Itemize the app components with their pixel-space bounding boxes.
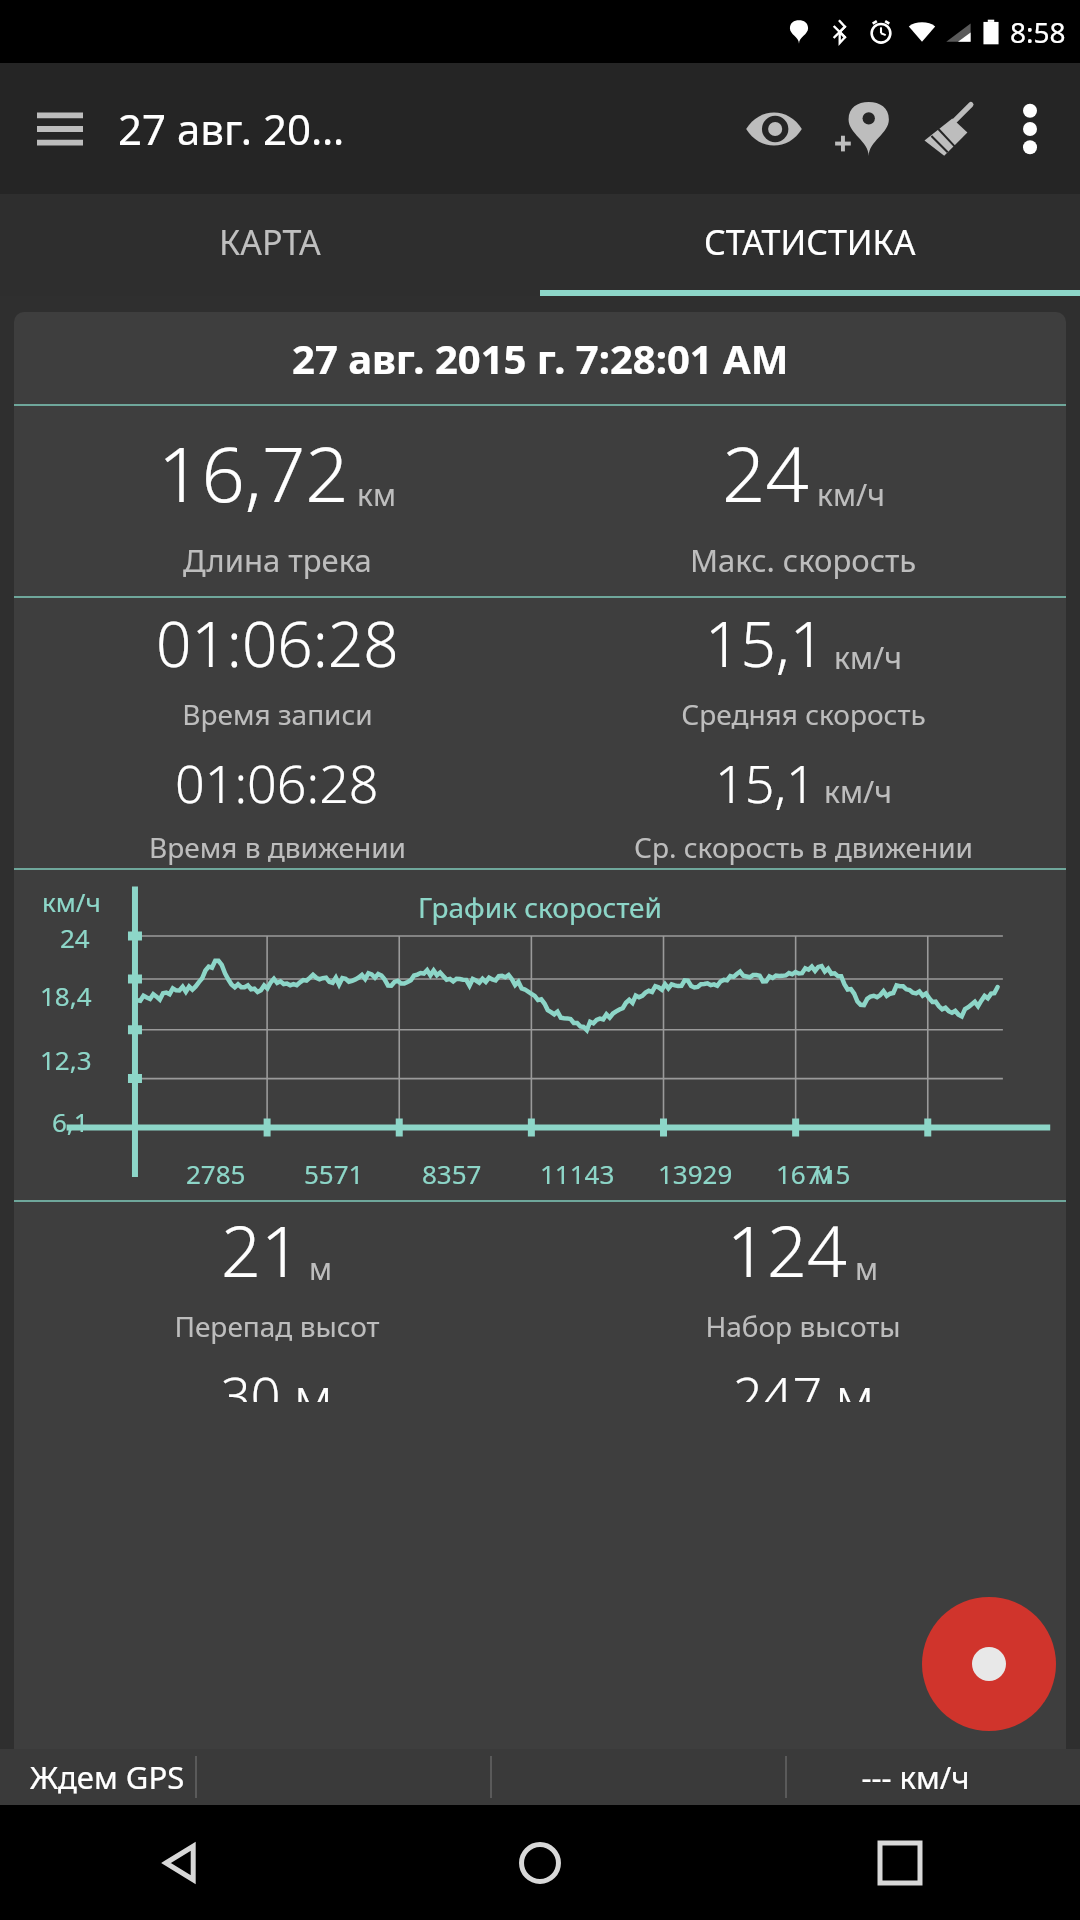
staticText: 15,1 [705, 601, 826, 685]
staticText: Макс. скорость [690, 539, 917, 581]
staticText: км [357, 474, 396, 515]
staticText: 124 [727, 1202, 847, 1297]
button[interactable]: Recents [720, 1805, 1080, 1920]
staticText: 16715 [776, 1156, 851, 1191]
staticText: Время записи [182, 695, 373, 733]
button[interactable]: 01:06:28 [14, 598, 540, 868]
button[interactable]: СТАТИСТИКА [540, 194, 1080, 290]
staticText: График скоростей [418, 888, 662, 926]
button[interactable]: Clear [906, 85, 994, 173]
staticText: 30 м [221, 1359, 333, 1402]
button[interactable]: 21 [14, 1202, 540, 1402]
staticText: 247 м [733, 1359, 874, 1402]
button[interactable]: Record [922, 1597, 1056, 1731]
staticText: Ждем GPS [30, 1756, 185, 1798]
staticText: 16,72 [158, 421, 349, 525]
staticText: 01:06:28 [175, 747, 379, 818]
staticText: КАРТА [219, 219, 321, 265]
staticText: 8357 [422, 1156, 482, 1191]
staticText: Набор высоты [705, 1307, 901, 1345]
button[interactable]: Add waypoint [818, 85, 906, 173]
staticText: 13929 [658, 1156, 733, 1191]
staticText: 6,1 [52, 1104, 89, 1139]
button[interactable]: Menu [24, 93, 96, 165]
staticText: 27 авг. 20… [118, 100, 345, 157]
staticText: 24 [722, 421, 809, 525]
staticText: км/ч [817, 474, 885, 515]
staticText: Перепад высот [174, 1307, 380, 1345]
button[interactable]: 16,72 [14, 406, 540, 596]
staticText: 15,1 [715, 747, 816, 818]
staticText: Ср. скорость в движении [634, 828, 973, 866]
staticText: Средняя скорость [681, 695, 926, 733]
button[interactable]: КАРТА [0, 194, 540, 290]
staticText: 8:58 [1010, 13, 1066, 51]
staticText: м [814, 1156, 834, 1191]
staticText: 21 [221, 1202, 301, 1297]
staticText: км/ч [42, 884, 101, 919]
staticText: 24 [60, 920, 90, 955]
button[interactable]: 15,1 [540, 598, 1066, 868]
staticText: 18,4 [40, 978, 92, 1013]
button[interactable]: Back [0, 1805, 360, 1920]
staticText: Время в движении [149, 828, 406, 866]
button[interactable]: Home [360, 1805, 720, 1920]
staticText: м [309, 1248, 333, 1289]
button[interactable]: More options [994, 93, 1066, 165]
staticText: км/ч [834, 637, 902, 678]
staticText: Длина трека [183, 539, 372, 581]
staticText: 11143 [540, 1156, 615, 1191]
staticText: 2785 [186, 1156, 246, 1191]
staticText: 27 авг. 2015 г. 7:28:01 AM [292, 331, 789, 385]
staticText: СТАТИСТИКА [704, 219, 916, 265]
staticText: --- км/ч [787, 1756, 1044, 1798]
staticText: 5571 [304, 1156, 364, 1191]
button[interactable]: Visibility [730, 85, 818, 173]
staticText: 01:06:28 [156, 601, 399, 685]
staticText: м [855, 1248, 879, 1289]
button[interactable]: 24 [540, 406, 1066, 596]
staticText: 12,3 [40, 1042, 92, 1077]
button[interactable]: 124 [540, 1202, 1066, 1402]
staticText: км/ч [824, 771, 892, 812]
